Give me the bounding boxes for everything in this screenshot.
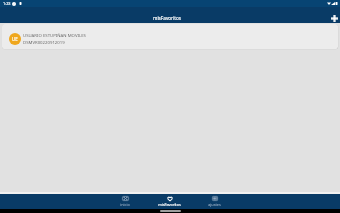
staticText: inicio [120,202,130,207]
button[interactable]: Add favourite [329,13,340,24]
staticText: ajustes [208,202,221,207]
button[interactable]: inicio [109,195,141,209]
button[interactable]: ajustes [198,195,230,209]
button[interactable]: UE [2,24,338,49]
staticText: 1:23 [3,1,11,6]
staticText: DSMVR00220912019 [23,39,65,45]
button[interactable]: misFavoritos [153,195,185,209]
staticText: misFavoritos [158,202,181,207]
staticText: misFavoritos [153,15,182,21]
staticText: USUARIO ESTUPIÑAN MOVILES [23,32,86,38]
staticText: UE [12,36,18,42]
